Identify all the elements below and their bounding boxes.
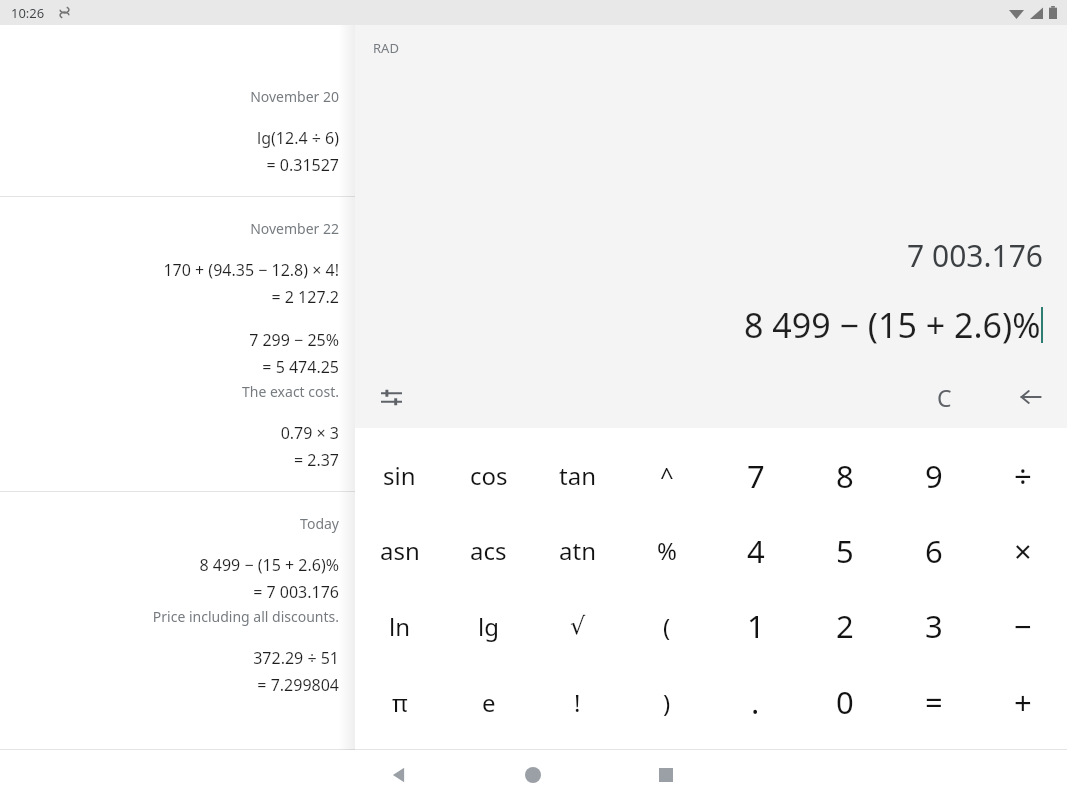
staticText: 4 <box>747 530 765 572</box>
button[interactable]: lg <box>444 588 533 664</box>
button[interactable]: = <box>889 664 978 740</box>
staticText: lg <box>478 610 499 643</box>
button[interactable]: 0.79 × 3 <box>0 422 339 471</box>
staticText: 8 <box>836 455 854 497</box>
button[interactable]: π <box>355 664 444 740</box>
staticText: × <box>1014 530 1032 572</box>
staticText: The exact cost. <box>0 382 339 401</box>
staticText: 0 <box>836 681 854 723</box>
staticText: 7 003.176 <box>355 235 1043 276</box>
button[interactable]: 0 <box>800 664 889 740</box>
button[interactable]: 7 <box>711 438 800 513</box>
button[interactable]: Recent apps <box>644 753 688 797</box>
staticText: = 0.31527 <box>0 154 339 176</box>
button[interactable]: sin <box>355 438 444 513</box>
button[interactable]: 2 <box>800 588 889 664</box>
staticText: lg(12.4 ÷ 6) <box>0 127 339 149</box>
button[interactable]: atn <box>533 513 622 588</box>
button[interactable]: √ <box>533 588 622 664</box>
button[interactable]: cos <box>444 438 533 513</box>
button[interactable]: % <box>622 513 711 588</box>
button[interactable]: − <box>978 588 1067 664</box>
staticText: cos <box>470 459 508 492</box>
button[interactable]: 3 <box>889 588 978 664</box>
staticText: ÷ <box>1014 455 1032 497</box>
staticText: 9 <box>925 455 943 497</box>
button[interactable]: 8 <box>800 438 889 513</box>
staticText: RAD <box>373 39 399 57</box>
button[interactable]: 5 <box>800 513 889 588</box>
button[interactable]: . <box>711 664 800 740</box>
staticText: 7 299 − 25% <box>0 329 339 351</box>
button[interactable]: ! <box>533 664 622 740</box>
staticText: e <box>482 686 496 719</box>
staticText: √ <box>570 612 586 640</box>
staticText: 8 499 − (15 + 2.6)% <box>0 554 339 576</box>
button[interactable]: × <box>978 513 1067 588</box>
staticText: 372.29 ÷ 51 <box>0 647 339 669</box>
staticText: = 5 474.25 <box>0 356 339 378</box>
staticText: November 20 <box>0 87 339 106</box>
button[interactable]: ln <box>355 588 444 664</box>
staticText: 6 <box>925 530 943 572</box>
button[interactable]: ( <box>622 588 711 664</box>
staticText: 3 <box>925 605 943 647</box>
staticText: Today <box>0 514 339 533</box>
button[interactable]: lg(12.4 ÷ 6) <box>0 127 339 176</box>
staticText: π <box>392 686 408 719</box>
staticText: 0.79 × 3 <box>0 422 339 444</box>
staticText: ) <box>663 686 671 719</box>
button[interactable]: ÷ <box>978 438 1067 513</box>
staticText: = 7 003.176 <box>0 581 339 603</box>
button[interactable]: ) <box>622 664 711 740</box>
button[interactable]: ^ <box>622 438 711 513</box>
staticText: 170 + (94.35 − 12.8) × 4! <box>0 259 339 281</box>
staticText: tan <box>559 459 596 492</box>
staticText: ^ <box>660 459 674 492</box>
button[interactable]: 4 <box>711 513 800 588</box>
staticText: % <box>657 534 677 567</box>
button[interactable]: Backspace <box>1008 374 1054 420</box>
staticText: ( <box>663 610 671 643</box>
staticText: 8 499 − (15 + 2.6)% <box>744 302 1041 348</box>
staticText: sin <box>383 459 416 492</box>
button[interactable]: asn <box>355 513 444 588</box>
staticText: Price including all discounts. <box>0 607 339 626</box>
staticText: ! <box>574 686 581 719</box>
button[interactable]: 9 <box>889 438 978 513</box>
staticText: + <box>1014 681 1032 723</box>
staticText: = 2.37 <box>0 449 339 471</box>
button[interactable]: 1 <box>711 588 800 664</box>
button[interactable]: 372.29 ÷ 51 <box>0 647 339 696</box>
staticText: 5 <box>836 530 854 572</box>
staticText: . <box>751 681 760 723</box>
staticText: 2 <box>836 605 854 647</box>
staticText: November 22 <box>0 219 339 238</box>
button[interactable]: 170 + (94.35 − 12.8) × 4! <box>0 259 339 308</box>
button[interactable]: Clear <box>921 374 967 420</box>
button[interactable]: 6 <box>889 513 978 588</box>
button[interactable]: + <box>978 664 1067 740</box>
button[interactable]: 8 499 − (15 + 2.6)% <box>0 554 339 626</box>
staticText: C <box>937 382 952 413</box>
staticText: acs <box>470 534 507 567</box>
button[interactable]: 7 299 − 25% <box>0 329 339 401</box>
staticText: 7 <box>747 455 765 497</box>
staticText: asn <box>380 534 420 567</box>
staticText: = <box>925 681 943 723</box>
staticText: atn <box>559 534 596 567</box>
staticText: − <box>1014 605 1032 647</box>
button[interactable]: Home <box>511 753 555 797</box>
button[interactable]: acs <box>444 513 533 588</box>
button[interactable]: Back <box>377 753 421 797</box>
staticText: ln <box>389 610 411 643</box>
staticText: 10:26 <box>11 4 45 22</box>
staticText: 1 <box>747 605 765 647</box>
button[interactable]: tan <box>533 438 622 513</box>
button[interactable]: Advanced options <box>368 374 414 420</box>
staticText: = 7.299804 <box>0 674 339 696</box>
button[interactable]: e <box>444 664 533 740</box>
staticText: = 2 127.2 <box>0 286 339 308</box>
